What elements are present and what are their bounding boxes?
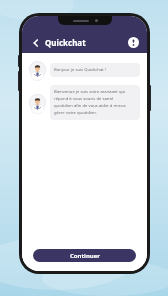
staticText: Bonjour je suis Quickchat ! bbox=[54, 67, 107, 73]
staticText: Bienvenue je suis votre assistant qui bbox=[54, 89, 126, 95]
staticText: quotidien afin de vous aider à mieux bbox=[54, 103, 126, 109]
button[interactable]: Continuer bbox=[33, 249, 136, 262]
button[interactable]: Back bbox=[29, 36, 42, 49]
staticText: Quickchat bbox=[45, 37, 86, 48]
staticText: gérer votre quotidien. bbox=[54, 110, 98, 116]
staticText: répond à vous soucis de santé bbox=[54, 96, 114, 102]
button[interactable]: Information bbox=[126, 35, 140, 49]
staticText: Continuer bbox=[70, 252, 100, 260]
